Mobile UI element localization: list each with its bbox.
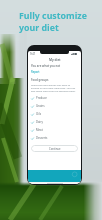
- button[interactable]: Produce: [31, 94, 78, 102]
- staticText: Desserts: [36, 136, 48, 140]
- button[interactable]: Oils: [31, 110, 78, 118]
- staticText: Food groups: [31, 78, 49, 82]
- staticText: Report: [31, 70, 40, 74]
- staticText: Dairy: [36, 120, 43, 124]
- staticText: Meat: [36, 128, 43, 132]
- staticText: Select the food groups you want to inclu…: [31, 83, 78, 92]
- staticText: Continue: [49, 147, 61, 151]
- button[interactable]: Dairy: [31, 118, 78, 126]
- button[interactable]: Grains: [31, 102, 78, 110]
- staticText: My diet: [49, 58, 61, 62]
- staticText: Grains: [36, 104, 45, 108]
- staticText: Produce: [36, 96, 47, 100]
- staticText: 9:41: [30, 52, 36, 56]
- staticText: Fully customize: [19, 10, 87, 22]
- button[interactable]: Continue: [31, 145, 78, 152]
- staticText: You are what you eat: [31, 64, 61, 68]
- staticText: your diet: [19, 22, 59, 34]
- button[interactable]: Desserts: [31, 134, 78, 142]
- staticText: Oils: [36, 112, 41, 116]
- button[interactable]: Meat: [31, 126, 78, 134]
